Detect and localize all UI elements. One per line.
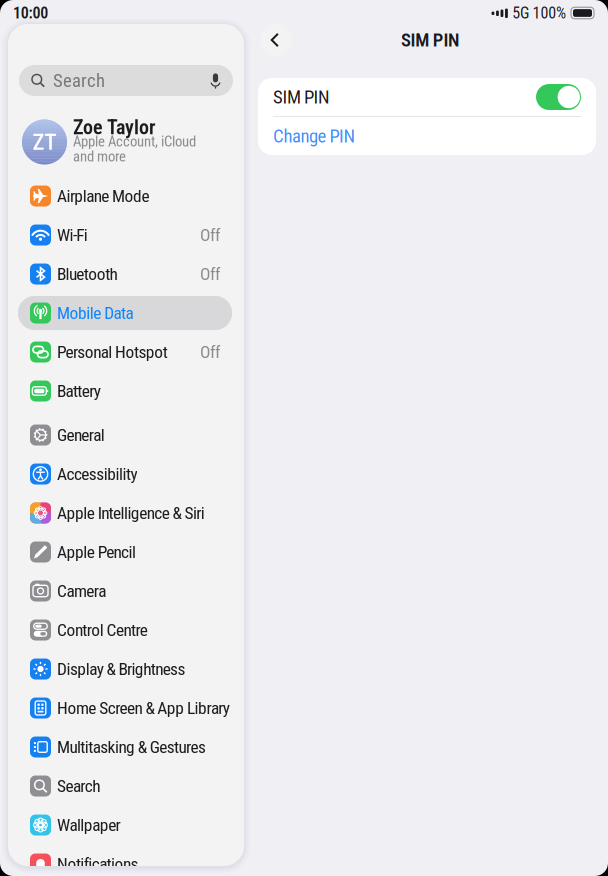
button[interactable]: Change PIN [258, 117, 596, 155]
staticText: Notifications [57, 854, 138, 874]
button[interactable]: Back [260, 24, 292, 56]
button[interactable]: Notifications [18, 847, 232, 876]
staticText: 5G 100% [512, 4, 566, 22]
staticText: Control Centre [57, 620, 148, 640]
staticText: Search [53, 70, 105, 91]
button[interactable]: Apple Intelligence & Siri [18, 496, 232, 530]
button[interactable]: Wi-Fi [18, 218, 232, 252]
staticText: SIM PIN [273, 86, 330, 108]
staticText: ZT [32, 129, 56, 155]
staticText: Off [200, 342, 220, 362]
staticText: Change PIN [273, 125, 355, 147]
button[interactable]: Camera [18, 574, 232, 608]
staticText: 10:00 [13, 4, 48, 22]
button[interactable]: General [18, 418, 232, 452]
button[interactable]: Search [18, 769, 232, 803]
staticText: SIM PIN [401, 29, 459, 51]
staticText: Battery [57, 381, 101, 401]
button[interactable]: Mobile Data [18, 296, 232, 330]
staticText: Multitasking & Gestures [57, 737, 206, 757]
staticText: Accessibility [57, 464, 137, 484]
staticText: Mobile Data [57, 303, 133, 323]
staticText: Personal Hotspot [57, 342, 168, 362]
staticText: Apple Pencil [57, 542, 136, 562]
staticText: Zoe Taylor [73, 116, 155, 139]
staticText: Search [57, 776, 100, 796]
staticText: Apple Account, iCloud [73, 133, 196, 150]
button[interactable]: Search [19, 65, 233, 96]
button[interactable]: Airplane Mode [18, 179, 232, 213]
button[interactable]: Personal Hotspot [18, 335, 232, 369]
staticText: Airplane Mode [57, 186, 149, 206]
button[interactable]: Apple Pencil [18, 535, 232, 569]
staticText: General [57, 425, 105, 445]
staticText: Wi-Fi [57, 225, 88, 245]
staticText: Camera [57, 581, 106, 601]
button[interactable]: Home Screen & App Library [18, 691, 232, 725]
staticText: Display & Brightness [57, 659, 186, 679]
button[interactable]: Control Centre [18, 613, 232, 647]
staticText: Home Screen & App Library [57, 698, 230, 718]
button[interactable]: Bluetooth [18, 257, 232, 291]
button[interactable]: Multitasking & Gestures [18, 730, 232, 764]
staticText: Bluetooth [57, 264, 118, 284]
button[interactable]: Battery [18, 374, 232, 408]
button[interactable]: SIM PIN [258, 78, 596, 116]
button[interactable]: Wallpaper [18, 808, 232, 842]
staticText: Apple Intelligence & Siri [57, 503, 205, 523]
button[interactable]: Display & Brightness [18, 652, 232, 686]
staticText: Wallpaper [57, 815, 121, 835]
staticText: and more [73, 148, 126, 165]
staticText: Off [200, 264, 220, 284]
button[interactable]: Accessibility [18, 457, 232, 491]
staticText: Off [200, 225, 220, 245]
button[interactable]: ZT [22, 117, 242, 167]
